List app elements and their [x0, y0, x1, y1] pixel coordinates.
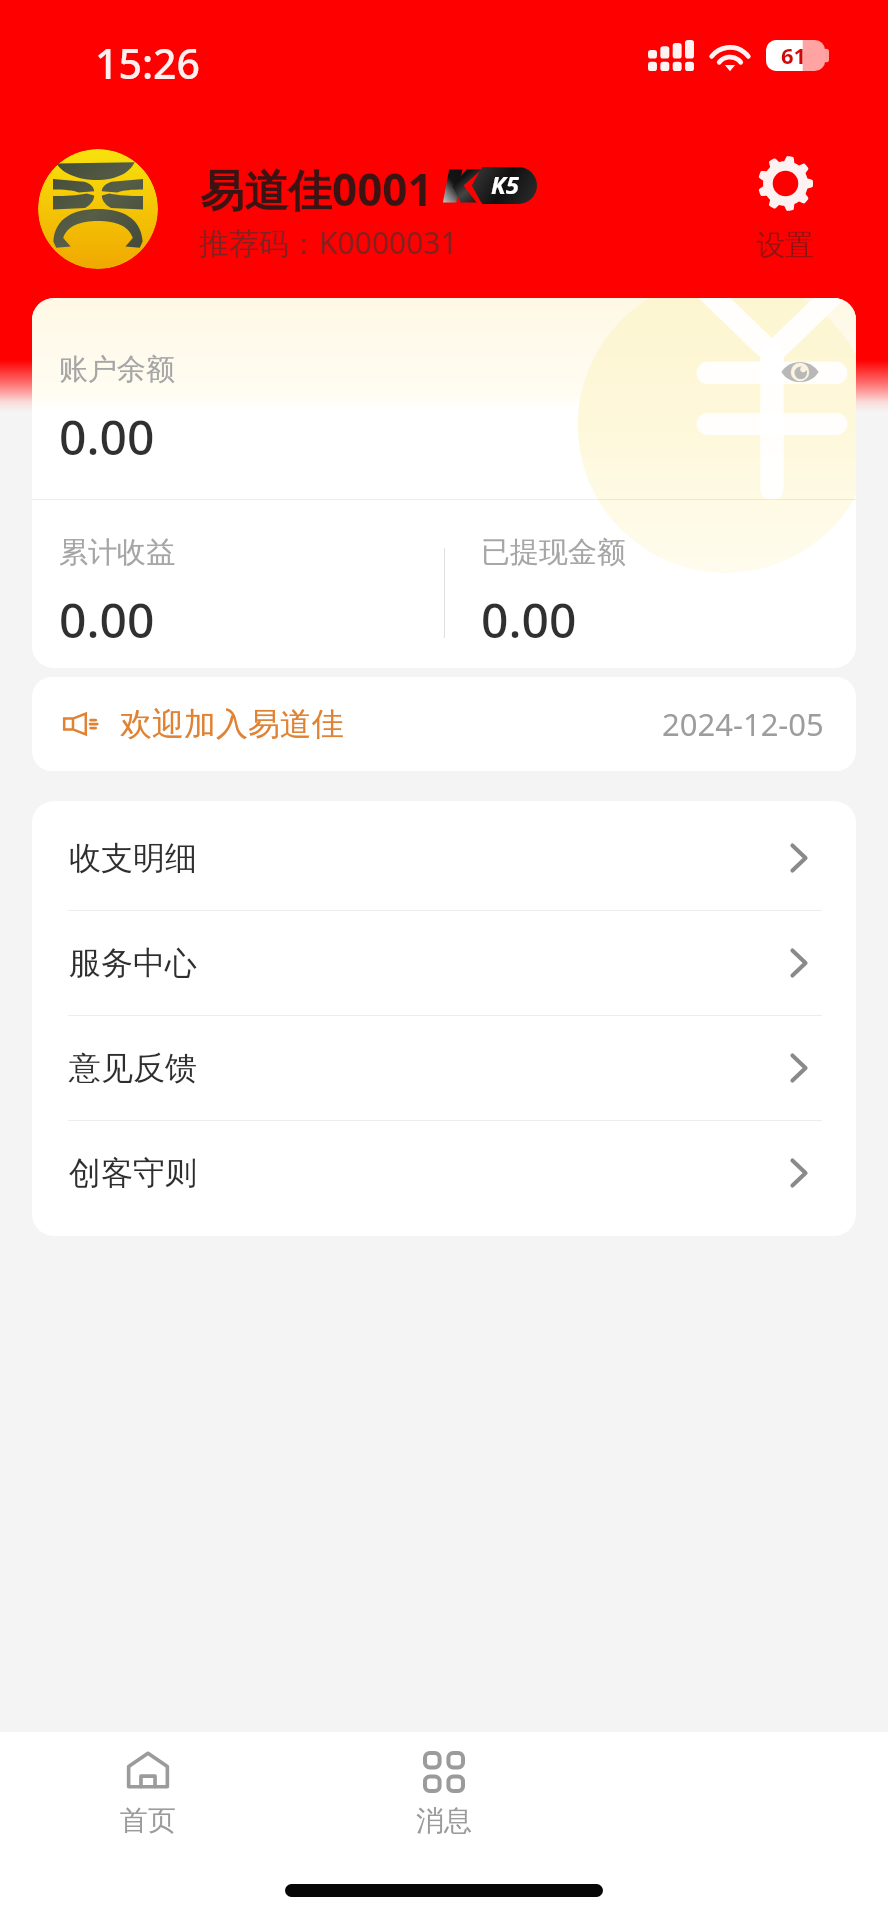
staticText: 61: [781, 40, 807, 70]
staticText: K5: [491, 168, 519, 201]
staticText: 消息: [416, 1803, 472, 1838]
staticText: 账户余额: [59, 351, 175, 388]
staticText: 创客守则: [69, 1153, 197, 1193]
button[interactable]: 设置: [744, 146, 826, 274]
staticText: 欢迎加入易道佳: [120, 704, 344, 744]
staticText: 推荐码：K0000031: [199, 222, 458, 263]
button[interactable]: 创客守则: [32, 1121, 856, 1225]
staticText: 0.00: [481, 587, 577, 652]
staticText: 服务中心: [69, 943, 197, 983]
staticText: 2024-12-05: [662, 703, 824, 745]
button[interactable]: 消息: [348, 1751, 540, 1838]
staticText: 累计收益: [59, 534, 175, 571]
staticText: 0.00: [59, 587, 155, 652]
button[interactable]: 用户头像: [38, 149, 158, 269]
staticText: 易道佳0001: [200, 159, 433, 219]
button[interactable]: 显示余额: [781, 358, 819, 386]
staticText: 首页: [120, 1803, 176, 1838]
staticText: 15:26: [95, 35, 200, 91]
staticText: 意见反馈: [69, 1048, 197, 1088]
button[interactable]: 首页: [52, 1751, 244, 1838]
staticText: 设置: [756, 227, 814, 264]
staticText: 已提现金额: [481, 534, 626, 571]
button[interactable]: 收支明细: [32, 806, 856, 910]
button[interactable]: 服务中心: [32, 911, 856, 1015]
staticText: 收支明细: [69, 838, 197, 878]
staticText: 0.00: [59, 404, 155, 469]
button[interactable]: 欢迎加入易道佳: [32, 677, 856, 771]
button[interactable]: 意见反馈: [32, 1016, 856, 1120]
